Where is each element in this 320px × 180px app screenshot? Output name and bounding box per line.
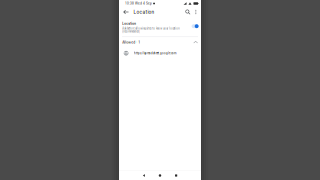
button[interactable]: Allowed · 1 (119, 37, 201, 47)
staticText: Location (133, 9, 154, 15)
button[interactable]: Recent apps (171, 171, 181, 179)
button[interactable]: Back (139, 171, 149, 179)
staticText: Ask before allowing sites to know your l… (122, 27, 179, 33)
button[interactable]: Search (184, 7, 192, 16)
button[interactable]: More options (192, 7, 200, 16)
button[interactable]: Navigate up (122, 7, 131, 16)
staticText: 10:38 Wed 4 Sep (125, 2, 152, 5)
button[interactable]: Location (119, 17, 201, 37)
staticText: Location (122, 22, 136, 25)
staticText: Allowed · 1 (122, 40, 140, 44)
button[interactable]: Home (155, 171, 165, 179)
staticText: https://spreadsheet.google.com (134, 52, 176, 55)
button[interactable]: https://spreadsheet.google.com (119, 47, 201, 59)
